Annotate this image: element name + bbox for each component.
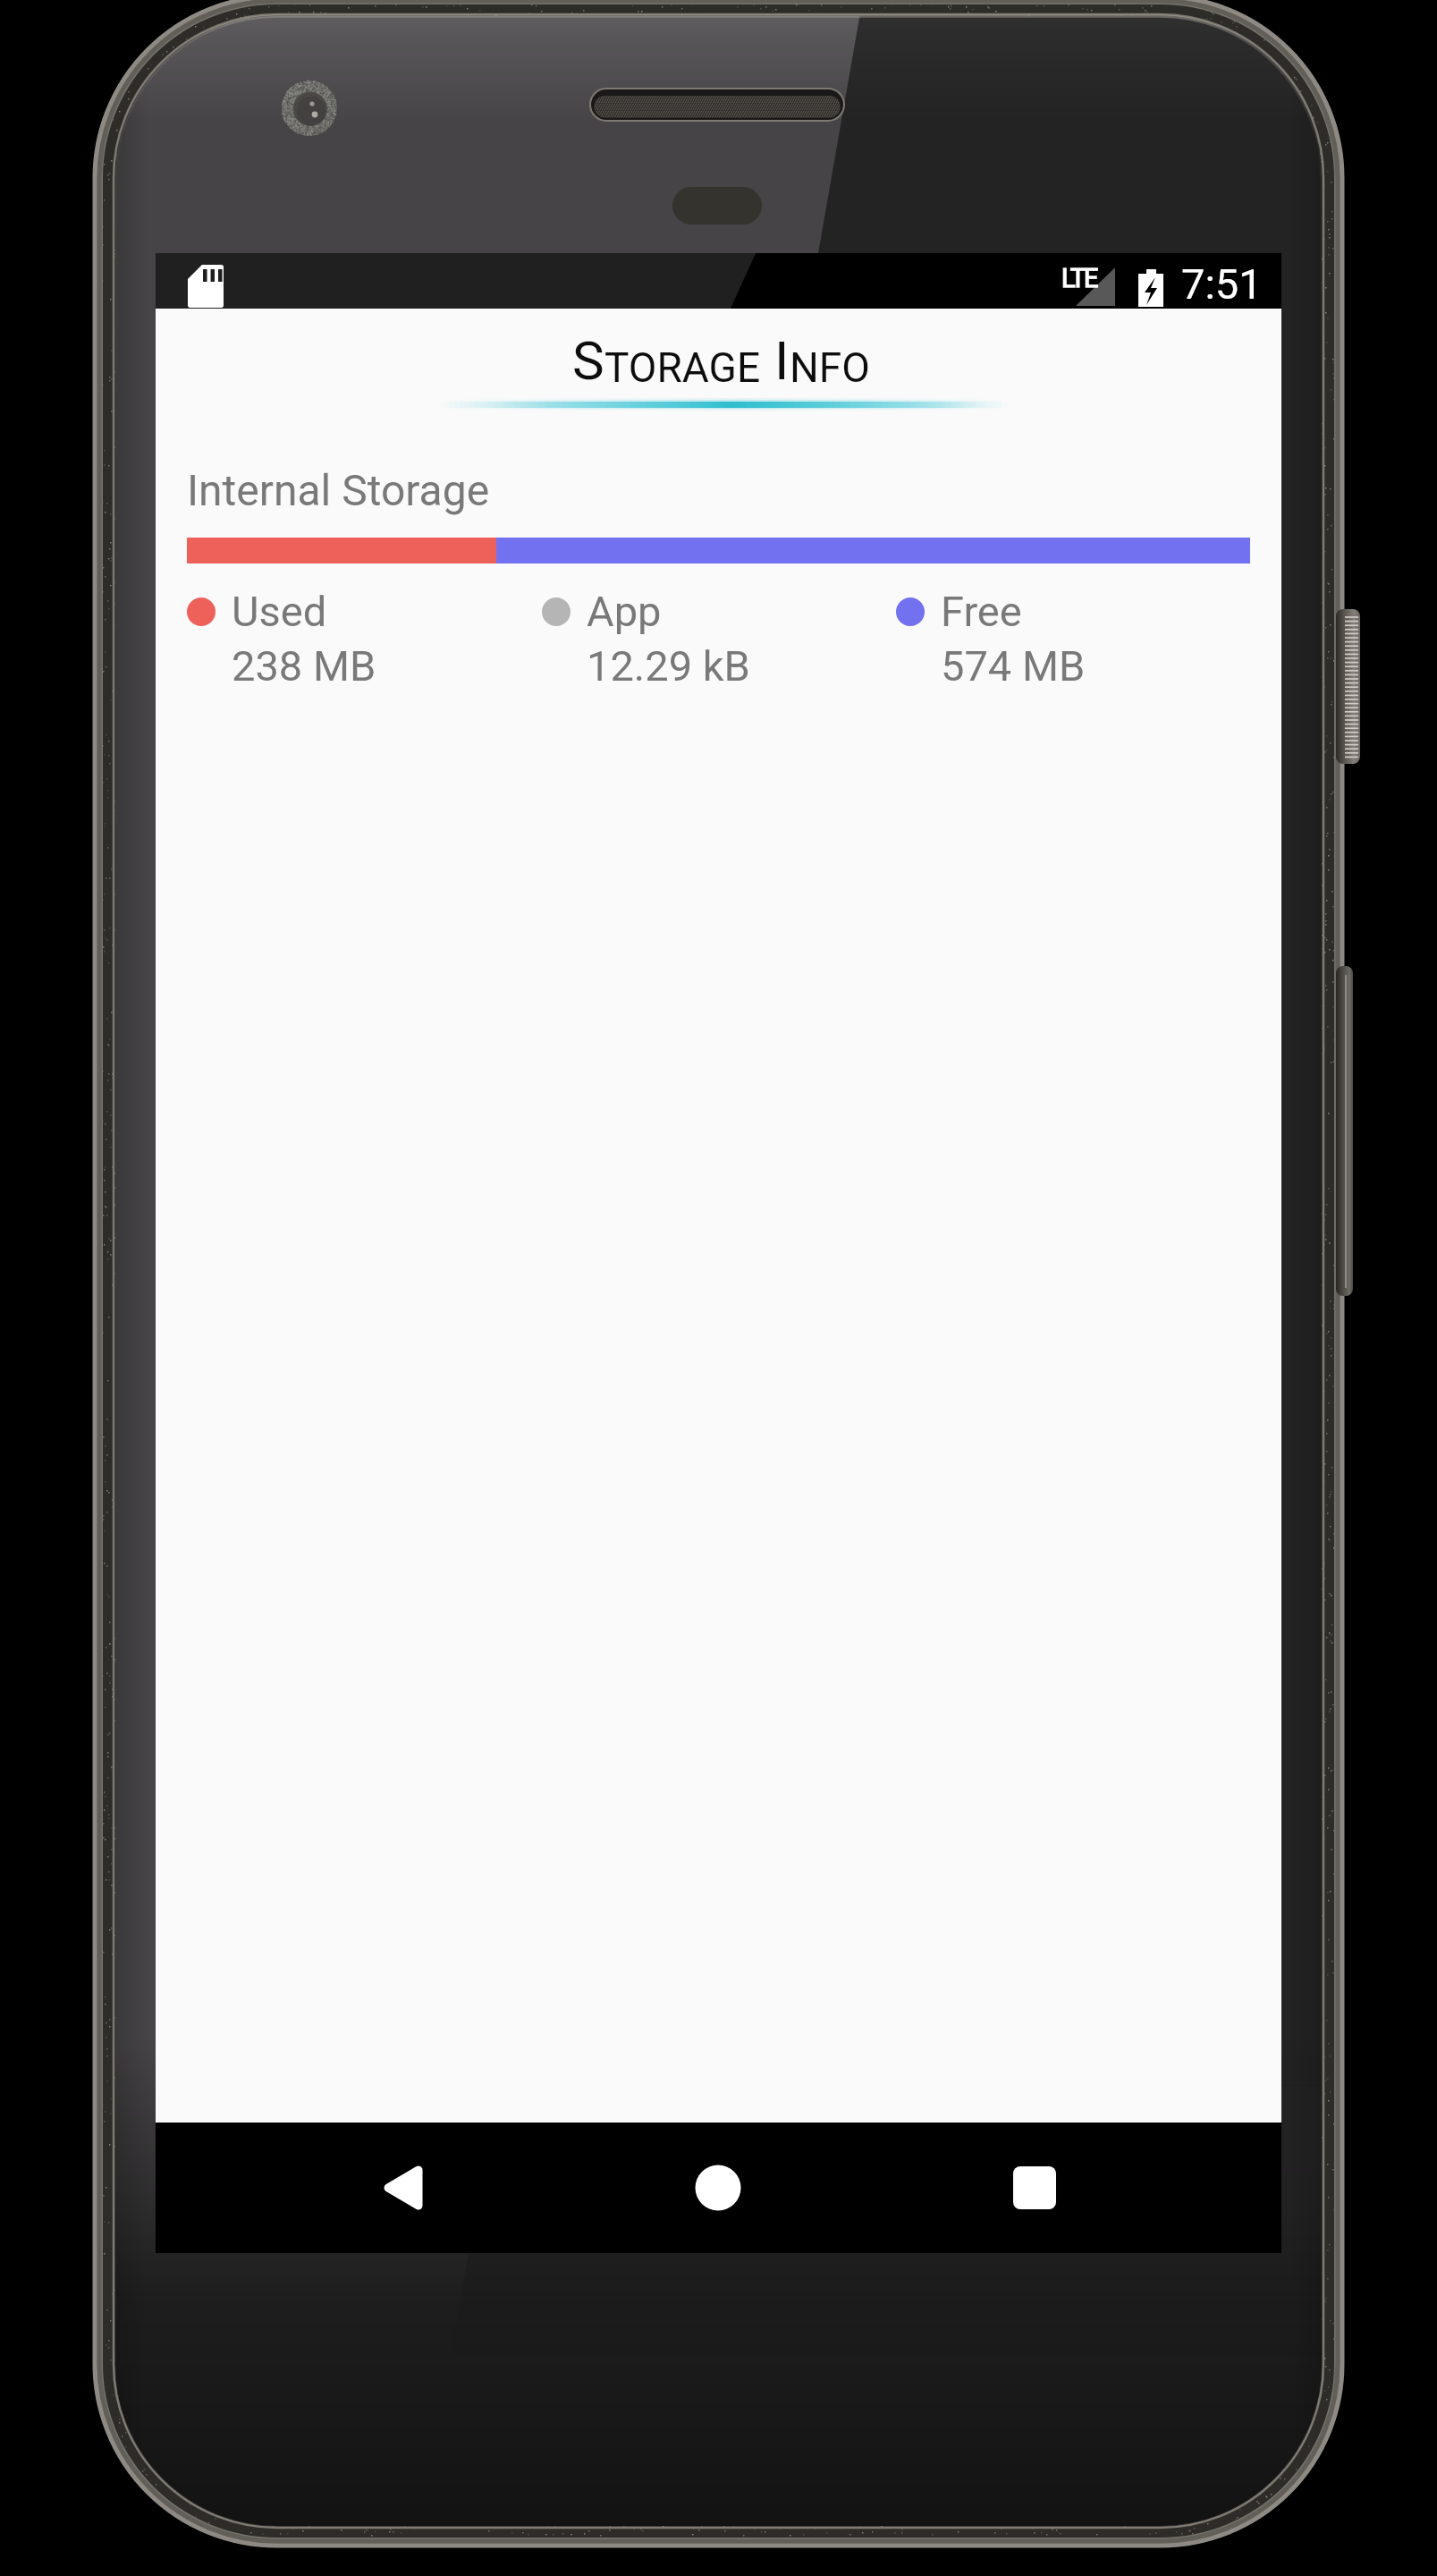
staticText: Free bbox=[941, 587, 1022, 636]
staticText: 238 MB bbox=[232, 641, 376, 691]
button[interactable]: Recents bbox=[981, 2134, 1088, 2241]
staticText: S bbox=[572, 329, 604, 392]
staticText: 12.29 kB bbox=[587, 641, 750, 691]
staticText: NFO bbox=[790, 343, 870, 392]
button[interactable]: Home bbox=[664, 2134, 772, 2241]
staticText: TORAGE bbox=[604, 343, 761, 392]
staticText: 574 MB bbox=[941, 641, 1086, 691]
staticText: 7:51 bbox=[1181, 259, 1263, 309]
button[interactable]: Storage Info title bbox=[156, 309, 1281, 440]
staticText: App bbox=[587, 587, 662, 636]
button[interactable]: Internal Storage bbox=[156, 440, 1281, 691]
staticText: Used bbox=[232, 587, 327, 636]
staticText: I bbox=[761, 329, 790, 392]
button[interactable]: Back bbox=[350, 2134, 457, 2241]
staticText: LTE bbox=[1061, 263, 1097, 293]
staticText: Internal Storage bbox=[187, 465, 490, 515]
